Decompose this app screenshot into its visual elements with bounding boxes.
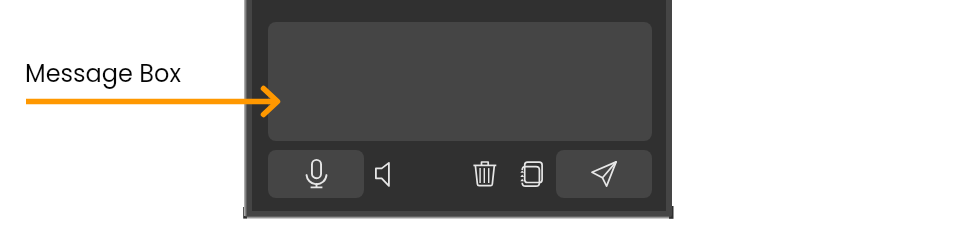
button[interactable]: Copy xyxy=(514,149,550,197)
button[interactable]: Message box xyxy=(268,22,652,141)
button[interactable]: Record voice message xyxy=(268,150,364,198)
button[interactable]: Play audio xyxy=(365,150,400,198)
button[interactable]: Delete xyxy=(467,149,503,197)
staticText: Message Box xyxy=(25,57,181,91)
button[interactable]: Send xyxy=(556,150,652,198)
